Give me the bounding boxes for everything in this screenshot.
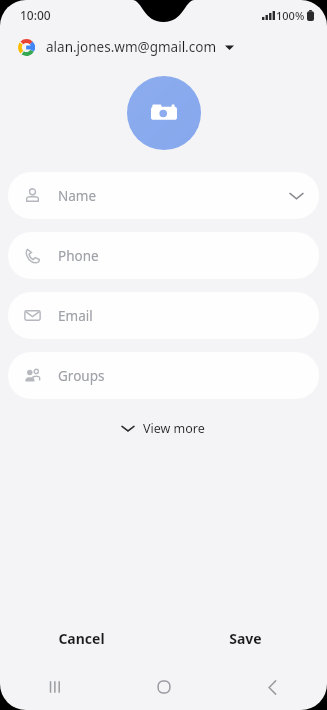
staticText: View more	[143, 420, 205, 437]
staticText: 100%	[276, 8, 305, 23]
button[interactable]: Groups	[8, 352, 319, 399]
button[interactable]: Name	[8, 172, 319, 219]
button[interactable]: Home	[109, 672, 218, 702]
button[interactable]: Phone	[8, 232, 319, 279]
staticText: Save	[229, 629, 262, 648]
staticText: alan.jones.wm@gmail.com	[46, 38, 217, 56]
button[interactable]: Back	[218, 672, 327, 702]
staticText: Groups	[58, 367, 105, 385]
button[interactable]: Save	[163, 618, 327, 658]
button[interactable]: Recents	[0, 672, 109, 702]
staticText: Phone	[58, 247, 99, 265]
staticText: 10:00	[20, 7, 51, 23]
button[interactable]: View more	[108, 413, 219, 444]
button[interactable]: Email	[8, 292, 319, 339]
button[interactable]: Add photo	[127, 76, 201, 150]
staticText: Name	[58, 187, 97, 205]
staticText: Email	[58, 307, 93, 325]
staticText: Cancel	[58, 629, 105, 648]
button[interactable]: alan.jones.wm@gmail.com	[0, 30, 327, 64]
button[interactable]: Cancel	[0, 618, 163, 658]
